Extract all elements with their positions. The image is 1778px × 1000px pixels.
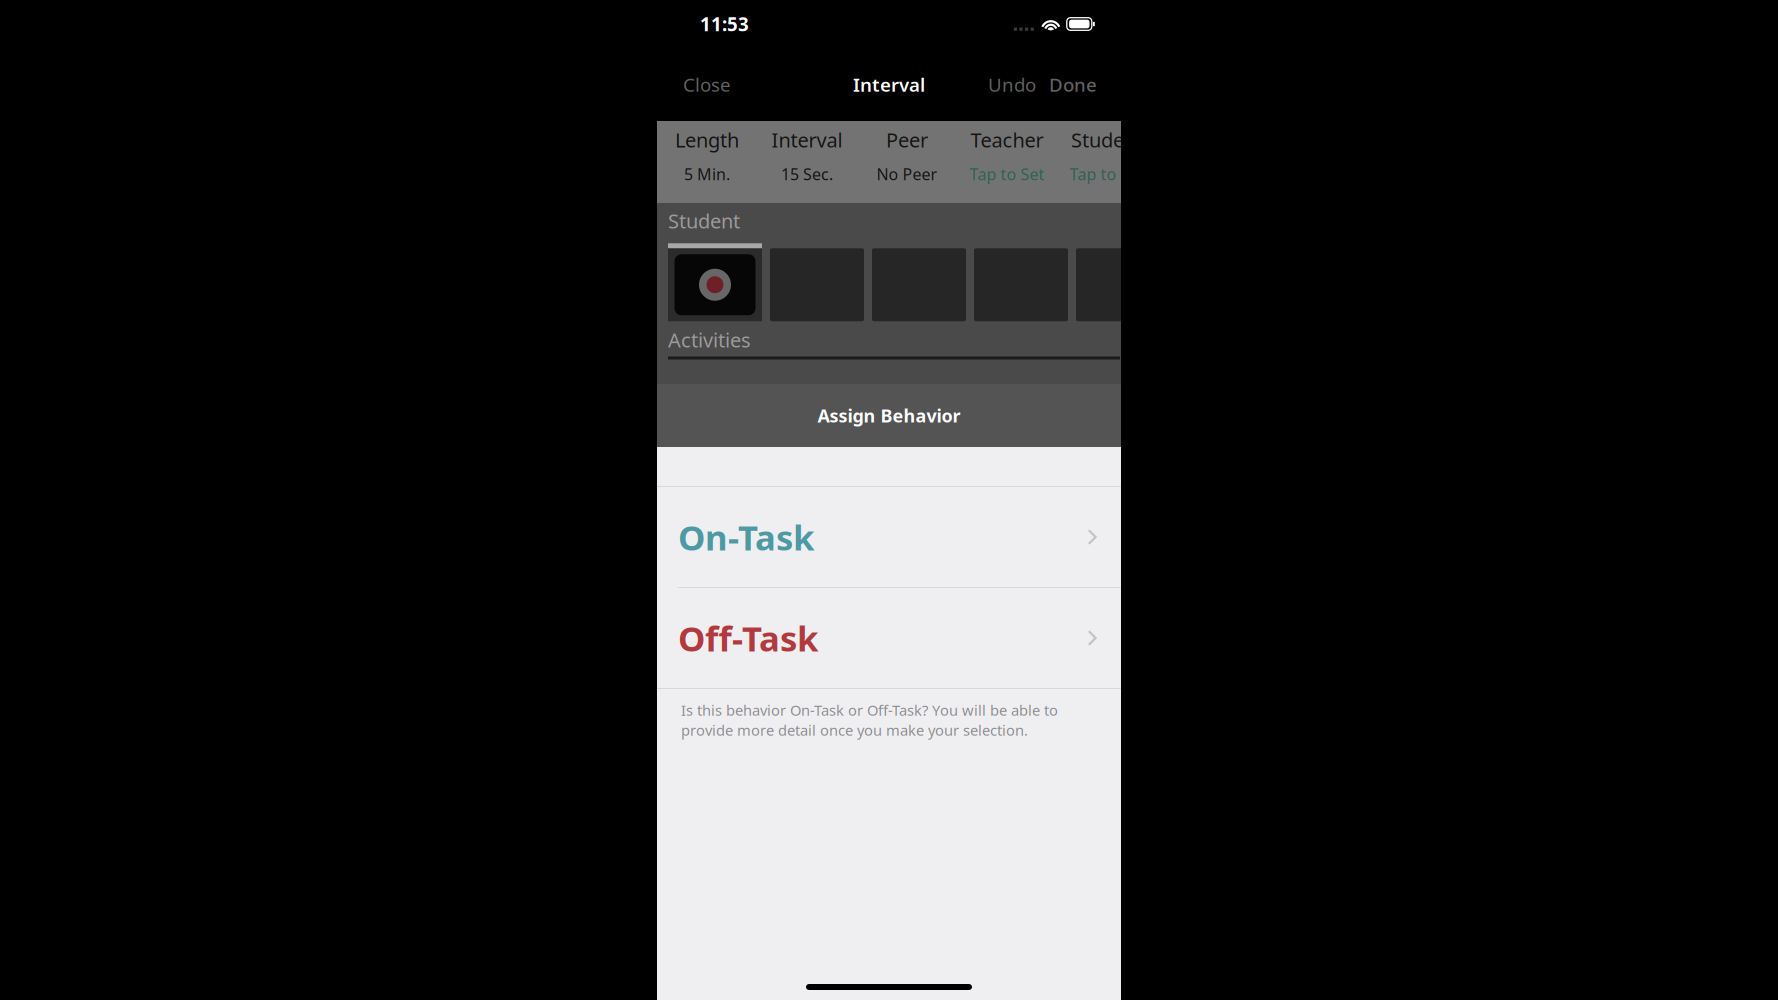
staticText: Peer [886, 126, 928, 153]
staticText: Student [1071, 126, 1143, 153]
button[interactable]: Recording student [668, 243, 762, 321]
staticText: Length [675, 126, 739, 153]
staticText: Close [683, 72, 731, 97]
staticText: On-Task [678, 513, 814, 561]
button[interactable]: Undo [983, 59, 1036, 110]
button[interactable]: Peer [857, 121, 957, 203]
staticText: Tap to Set [1069, 163, 1144, 185]
staticText: Student [668, 207, 740, 234]
button[interactable]: Interval [757, 121, 857, 203]
staticText: Teacher [970, 126, 1043, 153]
staticText: Interval [771, 126, 842, 153]
button[interactable]: Empty student slot [770, 243, 864, 321]
staticText: 15 Sec. [781, 163, 833, 185]
button[interactable]: Off-Task [657, 588, 1121, 688]
button[interactable]: Close [678, 59, 736, 110]
staticText: Tap to Set [969, 163, 1044, 185]
button[interactable]: Teacher [957, 121, 1057, 203]
staticText: Is this behavior On-Task or Off-Task? Yo… [681, 700, 1058, 740]
staticText: No Peer [876, 163, 937, 185]
button[interactable]: Done [1044, 59, 1102, 110]
button[interactable]: Empty student slot [872, 243, 966, 321]
staticText: Off-Task [678, 614, 818, 662]
staticText: 11:53 [700, 11, 749, 37]
button[interactable]: On-Task [657, 487, 1121, 587]
button[interactable]: Empty student slot [1076, 243, 1170, 321]
staticText: Activities [668, 326, 751, 353]
staticText: Undo [988, 72, 1036, 97]
button[interactable]: Empty student slot [974, 243, 1068, 321]
button[interactable]: Student [1057, 121, 1157, 203]
staticText: Assign Behavior [817, 403, 960, 428]
staticText: 5 Min. [684, 163, 730, 185]
button[interactable]: Length [657, 121, 757, 203]
staticText: Done [1049, 72, 1097, 97]
staticText: Interval [853, 72, 925, 97]
